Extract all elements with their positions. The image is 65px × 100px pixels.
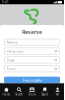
button[interactable]: Party size — [4, 47, 60, 55]
button[interactable]: Book — [26, 84, 38, 100]
staticText: Date — [7, 57, 15, 62]
button[interactable]: Saved — [38, 84, 51, 100]
staticText: Time — [7, 66, 16, 71]
staticText: Name — [7, 40, 18, 45]
staticText: Me — [56, 93, 60, 96]
staticText: Reserve — [22, 28, 42, 35]
button[interactable]: Home — [0, 84, 13, 100]
button[interactable]: Find a table — [4, 77, 60, 83]
staticText: Find a table — [22, 77, 41, 83]
staticText: Saved — [41, 93, 48, 96]
staticText: 9:41 — [2, 0, 9, 4]
staticText: Search — [15, 93, 23, 96]
staticText: Home — [2, 93, 10, 96]
staticText: Book — [28, 93, 35, 96]
button[interactable]: Me — [51, 84, 64, 100]
staticText: Party size — [7, 48, 24, 54]
button[interactable]: Date — [4, 56, 60, 63]
button[interactable]: Name — [4, 39, 60, 46]
button[interactable]: Search — [13, 84, 26, 100]
button[interactable]: Time — [4, 65, 60, 72]
